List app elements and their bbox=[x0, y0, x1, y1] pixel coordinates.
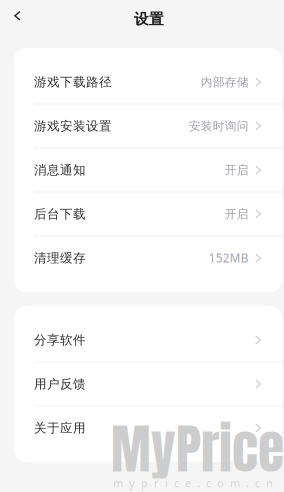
button[interactable]: 清理缓存 bbox=[14, 236, 282, 279]
staticText: 分享软件 bbox=[34, 332, 86, 348]
staticText: 152MB bbox=[209, 250, 249, 266]
staticText: 开启 bbox=[225, 163, 249, 177]
staticText: 开启 bbox=[225, 207, 249, 221]
staticText: 后台下载 bbox=[34, 206, 86, 222]
staticText: 消息通知 bbox=[34, 162, 86, 178]
staticText: 安装时询问 bbox=[189, 119, 249, 133]
staticText: 游戏下载路径 bbox=[34, 74, 112, 90]
button[interactable]: 后台下载 bbox=[14, 192, 282, 235]
button[interactable]: Back bbox=[0, 6, 32, 26]
staticText: MyPrice bbox=[111, 409, 284, 489]
staticText: 关于应用 bbox=[34, 420, 86, 436]
button[interactable]: 游戏下载路径 bbox=[14, 60, 282, 103]
staticText: 游戏安装设置 bbox=[34, 118, 112, 134]
staticText: 内部存储 bbox=[201, 75, 249, 89]
button[interactable]: 分享软件 bbox=[14, 318, 282, 361]
button[interactable]: 用户反馈 bbox=[14, 362, 282, 405]
button[interactable]: 游戏安装设置 bbox=[14, 104, 282, 147]
staticText: 用户反馈 bbox=[34, 376, 86, 392]
staticText: 设置 bbox=[134, 10, 164, 28]
button[interactable]: 关于应用 bbox=[14, 406, 282, 449]
button[interactable]: 消息通知 bbox=[14, 148, 282, 191]
staticText: m y p r i c e . c o m . c n bbox=[113, 476, 273, 490]
staticText: 清理缓存 bbox=[34, 250, 86, 266]
